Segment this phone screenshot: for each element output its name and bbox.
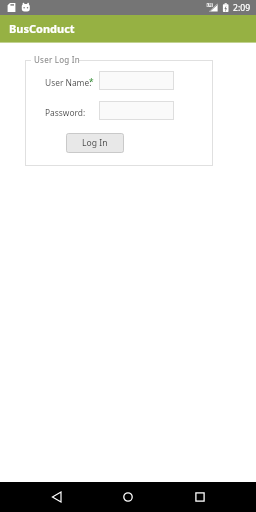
- staticText: Password:: [45, 107, 86, 118]
- button[interactable]: [99, 101, 174, 120]
- staticText: *: [89, 76, 94, 87]
- button[interactable]: Recent apps: [185, 482, 215, 512]
- button[interactable]: [99, 71, 174, 90]
- staticText: 2:09: [233, 2, 251, 14]
- button[interactable]: BusConduct: [0, 15, 256, 42]
- staticText: User Name:: [45, 77, 92, 88]
- button[interactable]: Home: [113, 482, 143, 512]
- staticText: Log In: [82, 137, 108, 149]
- button[interactable]: Log In: [66, 133, 124, 153]
- button[interactable]: Back: [42, 482, 72, 512]
- staticText: BusConduct: [9, 21, 75, 36]
- staticText: User Log In: [34, 54, 81, 65]
